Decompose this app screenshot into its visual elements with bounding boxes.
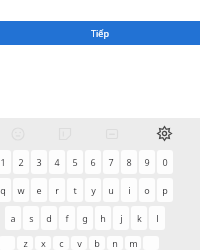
staticText: d xyxy=(46,212,52,224)
staticText: n xyxy=(112,237,118,249)
button[interactable]: j xyxy=(113,206,129,230)
staticText: 5 xyxy=(72,156,78,168)
button[interactable]: s xyxy=(23,206,39,230)
button[interactable]: 5 xyxy=(67,150,83,174)
staticText: c xyxy=(59,237,64,249)
button[interactable]: w xyxy=(13,178,29,202)
button[interactable]: 8 xyxy=(121,150,137,174)
button[interactable]: 1 xyxy=(0,150,11,174)
staticText: j xyxy=(120,212,123,224)
staticText: 2 xyxy=(18,156,24,168)
staticText: u xyxy=(108,184,114,196)
button[interactable]: o xyxy=(139,178,155,202)
button[interactable]: 2 xyxy=(13,150,29,174)
button[interactable]: q xyxy=(0,178,11,202)
staticText: 6 xyxy=(90,156,96,168)
staticText: 1 xyxy=(0,156,6,168)
staticText: 9 xyxy=(144,156,150,168)
staticText: p xyxy=(162,184,168,196)
button[interactable]: g xyxy=(77,206,93,230)
button[interactable]: i xyxy=(121,178,137,202)
staticText: 4 xyxy=(54,156,60,168)
staticText: a xyxy=(10,212,16,224)
button[interactable]: z xyxy=(17,236,33,250)
staticText: f xyxy=(65,212,69,224)
staticText: h xyxy=(100,212,106,224)
staticText: o xyxy=(144,184,150,196)
button[interactable]: d xyxy=(41,206,57,230)
staticText: x xyxy=(41,237,46,249)
button[interactable]: y xyxy=(85,178,101,202)
staticText: l xyxy=(156,212,159,224)
button[interactable]: n xyxy=(107,236,123,250)
staticText: g xyxy=(82,212,88,224)
staticText: t xyxy=(73,184,77,196)
button[interactable]: h xyxy=(95,206,111,230)
button[interactable]: f xyxy=(59,206,75,230)
button[interactable]: x xyxy=(35,236,51,250)
staticText: 7 xyxy=(108,156,114,168)
button[interactable]: m xyxy=(125,236,141,250)
staticText: 8 xyxy=(126,156,132,168)
staticText: b xyxy=(94,237,100,249)
staticText: k xyxy=(137,212,142,224)
staticText: i xyxy=(128,184,131,196)
button[interactable]: v xyxy=(71,236,87,250)
button[interactable]: k xyxy=(131,206,147,230)
button[interactable]: Settings xyxy=(157,126,172,141)
staticText: s xyxy=(29,212,34,224)
staticText: 3 xyxy=(36,156,42,168)
button[interactable]: p xyxy=(157,178,173,202)
button[interactable]: 4 xyxy=(49,150,65,174)
button[interactable]: l xyxy=(149,206,165,230)
staticText: m xyxy=(129,237,138,249)
staticText: Tiếp xyxy=(91,27,109,39)
staticText: r xyxy=(55,184,59,196)
button[interactable]: GIF xyxy=(105,127,119,141)
button[interactable]: Stickers xyxy=(58,127,72,141)
staticText: w xyxy=(17,184,25,196)
staticText: z xyxy=(23,237,28,249)
button[interactable]: 3 xyxy=(31,150,47,174)
staticText: e xyxy=(36,184,42,196)
button[interactable]: 0 xyxy=(157,150,173,174)
button[interactable]: a xyxy=(5,206,21,230)
button[interactable]: e xyxy=(31,178,47,202)
button[interactable]: b xyxy=(89,236,105,250)
staticText: q xyxy=(0,184,6,196)
button[interactable]: 9 xyxy=(139,150,155,174)
button[interactable]: r xyxy=(49,178,65,202)
button[interactable]: u xyxy=(103,178,119,202)
button[interactable]: c xyxy=(53,236,69,250)
button[interactable]: 7 xyxy=(103,150,119,174)
button[interactable]: Tiếp xyxy=(0,21,200,45)
button[interactable]: 6 xyxy=(85,150,101,174)
button[interactable]: t xyxy=(67,178,83,202)
staticText: y xyxy=(91,184,96,196)
button[interactable]: Emoji xyxy=(11,127,25,141)
staticText: v xyxy=(77,237,82,249)
staticText: 0 xyxy=(162,156,168,168)
